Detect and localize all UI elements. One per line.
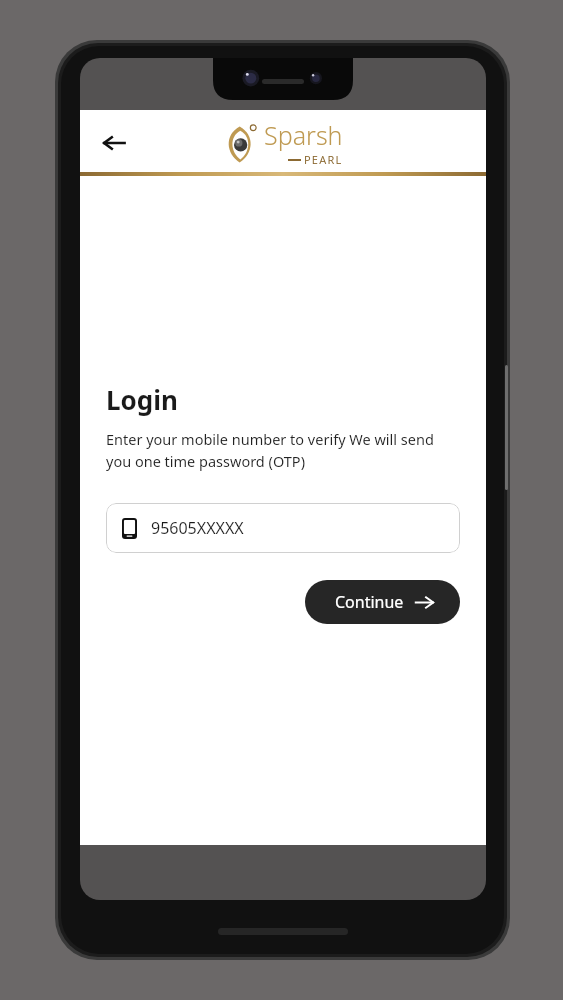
staticText: Continue [335, 591, 404, 613]
staticText: Sparsh [264, 118, 343, 152]
staticText: Login [106, 382, 178, 417]
button[interactable]: Continue [305, 580, 460, 624]
button[interactable]: Back [92, 121, 136, 165]
staticText: 95605XXXXX [151, 517, 244, 539]
staticText: PEARL [304, 152, 343, 167]
staticText: Enter your mobile number to verify We wi… [106, 429, 460, 471]
button[interactable]: 95605XXXXX [106, 503, 460, 553]
